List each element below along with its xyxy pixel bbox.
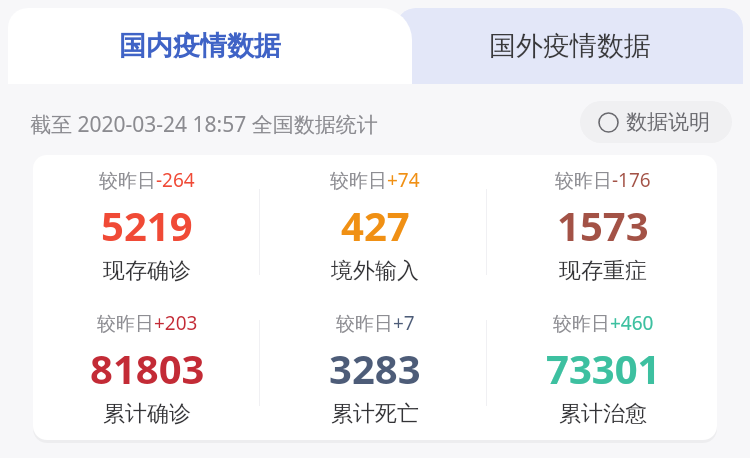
button[interactable]: 较昨日 (261, 297, 489, 440)
staticText: 较昨日 (555, 169, 612, 193)
staticText: 累计确诊 (103, 400, 191, 428)
staticText: 累计治愈 (559, 400, 647, 428)
staticText: 境外输入 (331, 257, 419, 285)
staticText: 5219 (101, 198, 193, 252)
staticText: 累计死亡 (331, 400, 419, 428)
button[interactable]: 较昨日 (489, 297, 717, 440)
staticText: 国内疫情数据 (119, 29, 281, 63)
button[interactable]: 数据说明 (580, 101, 732, 143)
staticText: 数据说明 (626, 109, 710, 135)
staticText: +203 (154, 310, 198, 336)
staticText: 73301 (546, 341, 661, 395)
button[interactable]: 较昨日 (33, 155, 261, 297)
staticText: 81803 (90, 341, 205, 395)
staticText: 3283 (329, 341, 421, 395)
staticText: -176 (612, 167, 651, 193)
staticText: 国外疫情数据 (489, 29, 651, 63)
staticText: 较昨日 (553, 312, 610, 336)
staticText: 现存重症 (559, 257, 647, 285)
button[interactable]: 较昨日 (489, 155, 717, 297)
button[interactable]: 较昨日 (261, 155, 489, 297)
staticText: +74 (387, 167, 420, 193)
staticText: 较昨日 (97, 312, 154, 336)
staticText: 现存确诊 (103, 257, 191, 285)
staticText: 1573 (557, 198, 649, 252)
button[interactable]: 较昨日 (33, 297, 261, 440)
staticText: +460 (610, 310, 654, 336)
button[interactable]: 国外疫情数据 (396, 8, 743, 84)
staticText: -264 (156, 167, 195, 193)
staticText: +7 (393, 310, 415, 336)
staticText: 较昨日 (336, 312, 393, 336)
staticText: 较昨日 (99, 169, 156, 193)
staticText: 截至 2020-03-24 18:57 全国数据统计 (30, 110, 378, 139)
staticText: 较昨日 (330, 169, 387, 193)
staticText: 427 (341, 198, 410, 252)
button[interactable]: 国内疫情数据 (8, 8, 412, 84)
